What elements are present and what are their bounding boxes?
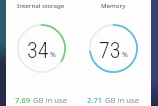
button[interactable]: Internal storage [5,0,77,106]
staticText: % [122,50,128,60]
button[interactable]: Memory [77,0,149,106]
staticText: 34 [27,37,49,63]
staticText: GB in use [105,95,140,105]
staticText: Memory [101,1,126,9]
staticText: Internal storage [17,1,65,9]
staticText: 73 [99,37,121,63]
staticText: 7.69 [15,95,31,105]
staticText: % [50,50,56,60]
staticText: 2.71 [87,95,103,105]
staticText: GB in use [33,95,68,105]
